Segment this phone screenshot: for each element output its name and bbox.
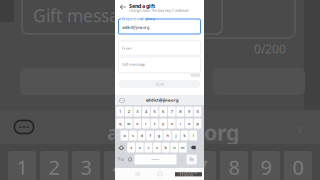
staticText: 6 [162, 109, 164, 114]
staticText: 8 [179, 109, 181, 114]
staticText: Send a gift [129, 2, 155, 10]
button[interactable]: j [172, 130, 180, 140]
staticText: p [196, 121, 198, 126]
button[interactable]: 2 [125, 106, 133, 116]
button[interactable]: Emoji [126, 154, 134, 164]
staticText: a [123, 133, 125, 138]
staticText: o [188, 121, 190, 126]
button[interactable]: f [146, 130, 154, 140]
button[interactable]: w [125, 118, 133, 128]
staticText: e [136, 121, 138, 126]
button[interactable]: q [116, 118, 124, 128]
staticText: 0/200 [254, 41, 286, 57]
staticText: 2 [128, 109, 130, 114]
staticText: h [166, 133, 168, 138]
staticText: 1 [16, 154, 27, 180]
staticText: r [145, 121, 147, 126]
staticText: f [150, 133, 151, 138]
staticText: z [130, 145, 132, 150]
button[interactable]: a [120, 130, 128, 140]
staticText: 0/200 [191, 74, 200, 77]
staticText: c [147, 145, 149, 150]
button[interactable]: d [138, 130, 145, 140]
button[interactable]: p [194, 118, 201, 128]
staticText: d [141, 133, 143, 138]
button[interactable]: y [159, 118, 167, 128]
staticText: 4 [145, 109, 147, 114]
staticText: Gift message [122, 61, 145, 67]
button[interactable]: 8 [176, 106, 184, 116]
staticText: 8 [228, 154, 239, 180]
button[interactable]: m [179, 142, 187, 152]
button[interactable]: Back [119, 3, 127, 11]
staticText: 1 [119, 109, 121, 114]
staticText: ?1☺ [118, 158, 124, 161]
button[interactable]: u [168, 118, 176, 128]
staticText: 2024/05/06 11:02:55 [179, 171, 197, 178]
button[interactable]: c [144, 142, 152, 152]
button[interactable]: n [170, 142, 178, 152]
staticText: i [180, 121, 181, 126]
staticText: 7 [196, 154, 207, 180]
button[interactable]: 3 [133, 106, 141, 116]
button[interactable]: Symbols [116, 154, 126, 164]
button[interactable]: Recents [178, 169, 188, 179]
staticText: y [162, 121, 164, 126]
button[interactable]: o [185, 118, 193, 128]
staticText: s [132, 133, 134, 138]
staticText: q [119, 121, 121, 126]
button[interactable]: 6 [159, 106, 167, 116]
button[interactable]: r [142, 118, 150, 128]
button[interactable]: 7 [168, 106, 176, 116]
button[interactable]: 4 [142, 106, 150, 116]
button[interactable]: z [127, 142, 135, 152]
button[interactable]: g [155, 130, 163, 140]
button[interactable]: i [176, 118, 184, 128]
button[interactable]: b [162, 142, 169, 152]
staticText: x [139, 145, 141, 150]
staticText: n [173, 145, 175, 150]
staticText: org [204, 118, 239, 146]
staticText: Using Clean The Journey Continues [129, 7, 189, 13]
button[interactable]: Back [132, 169, 142, 179]
button[interactable]: Delete [187, 142, 198, 152]
staticText: Send [155, 81, 163, 87]
button[interactable]: Shift [116, 142, 126, 152]
staticText: Go [190, 158, 194, 161]
button[interactable]: s [129, 130, 137, 140]
staticText: 4 [112, 154, 123, 180]
staticText: v [156, 145, 158, 150]
staticText: b [165, 145, 167, 150]
staticText: 3 [80, 154, 91, 180]
staticText: 5 [153, 109, 155, 114]
button[interactable]: Space [134, 154, 176, 164]
button[interactable]: Send [118, 80, 200, 88]
button[interactable]: v [153, 142, 161, 152]
button[interactable]: 1 [116, 106, 124, 116]
staticText: addict@jina.org [146, 97, 179, 103]
staticText: w [127, 121, 130, 126]
button[interactable]: x [136, 142, 144, 152]
staticText: . [181, 157, 182, 162]
staticText: 9 [260, 154, 271, 180]
button[interactable]: h [163, 130, 171, 140]
button[interactable]: e [133, 118, 141, 128]
staticText: 0 [196, 109, 198, 114]
staticText: a [107, 119, 119, 146]
button[interactable]: 9 [185, 106, 193, 116]
button[interactable]: Home [155, 169, 165, 179]
button[interactable]: k [181, 130, 188, 140]
button[interactable]: t [151, 118, 158, 128]
button[interactable]: l [189, 130, 197, 140]
button[interactable]: Go [186, 154, 197, 164]
staticText: Recipient email address [122, 17, 155, 21]
staticText: addict@jina.org [122, 24, 149, 30]
staticText: 9 [188, 109, 190, 114]
button[interactable]: 0 [194, 106, 201, 116]
staticText: 3 [136, 109, 138, 114]
staticText: u [171, 121, 173, 126]
button[interactable]: 5 [151, 106, 158, 116]
staticText: l [193, 133, 194, 138]
